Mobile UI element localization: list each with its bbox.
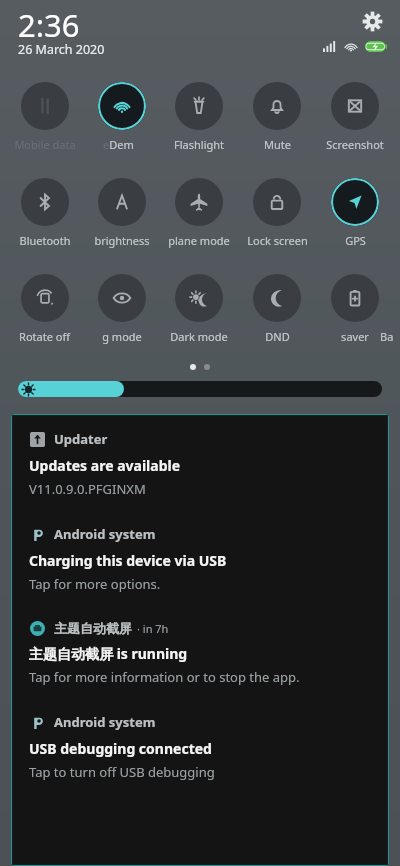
button[interactable]: Dark mode bbox=[160, 272, 238, 346]
staticText: Rotate off bbox=[19, 329, 70, 344]
button[interactable]: Android system bbox=[11, 509, 389, 604]
staticText: g mode bbox=[102, 329, 142, 344]
staticText: Flashlight bbox=[174, 137, 224, 152]
staticText: · in 7h bbox=[137, 621, 169, 636]
staticText: V11.0.9.0.PFGINXM bbox=[29, 480, 146, 498]
button[interactable]: Brightness bbox=[18, 380, 382, 398]
button[interactable]: saver bbox=[316, 272, 394, 346]
button[interactable]: Updater bbox=[11, 414, 389, 509]
staticText: Android system bbox=[54, 525, 156, 543]
button[interactable]: Rotate off bbox=[6, 272, 83, 346]
button[interactable]: Lock screen bbox=[238, 176, 316, 250]
staticText: Updater bbox=[54, 430, 108, 448]
staticText: Lock screen bbox=[247, 233, 308, 248]
button[interactable]: Bluetooth bbox=[6, 176, 83, 250]
staticText: Mobile data bbox=[14, 137, 76, 152]
button[interactable]: DND bbox=[238, 272, 316, 346]
staticText: Ba bbox=[380, 329, 394, 344]
staticText: USB debugging connected bbox=[29, 739, 212, 758]
staticText: Updates are available bbox=[29, 456, 181, 475]
staticText: 主题自动截屏 is running bbox=[29, 644, 188, 663]
staticText: brightness bbox=[94, 233, 150, 248]
staticText: 2:36 bbox=[18, 4, 80, 46]
button[interactable]: g mode bbox=[83, 272, 160, 346]
staticText: GPS bbox=[345, 233, 366, 248]
staticText: Screenshot bbox=[326, 137, 384, 152]
button[interactable]: GPS bbox=[316, 176, 394, 250]
button[interactable]: Screenshot bbox=[316, 80, 394, 154]
staticText: saver bbox=[341, 329, 369, 344]
button[interactable]: brightness bbox=[83, 176, 160, 250]
staticText: e bbox=[103, 137, 110, 152]
button[interactable]: Mobile data bbox=[6, 80, 83, 154]
staticText: Tap to turn off USB debugging bbox=[29, 763, 215, 781]
staticText: Dark mode bbox=[170, 329, 228, 344]
staticText: Mute bbox=[264, 137, 291, 152]
staticText: Bluetooth bbox=[19, 233, 71, 248]
staticText: Charging this device via USB bbox=[29, 551, 227, 570]
button[interactable]: Dem bbox=[83, 80, 160, 154]
button[interactable]: 主题自动截屏 bbox=[11, 604, 389, 697]
button[interactable]: Android system bbox=[11, 697, 389, 792]
button[interactable]: Flashlight bbox=[160, 80, 238, 154]
staticText: Android system bbox=[54, 713, 156, 731]
staticText: Dem bbox=[109, 137, 134, 152]
button[interactable]: Settings bbox=[358, 7, 386, 35]
staticText: Tap for more options. bbox=[29, 575, 161, 593]
staticText: DND bbox=[265, 329, 290, 344]
staticText: plane mode bbox=[168, 233, 230, 248]
staticText: Tap for more information or to stop the … bbox=[29, 668, 300, 686]
staticText: 26 March 2020 bbox=[18, 41, 105, 58]
staticText: 主题自动截屏 bbox=[54, 620, 132, 636]
button[interactable]: plane mode bbox=[160, 176, 238, 250]
button[interactable]: Mute bbox=[238, 80, 316, 154]
